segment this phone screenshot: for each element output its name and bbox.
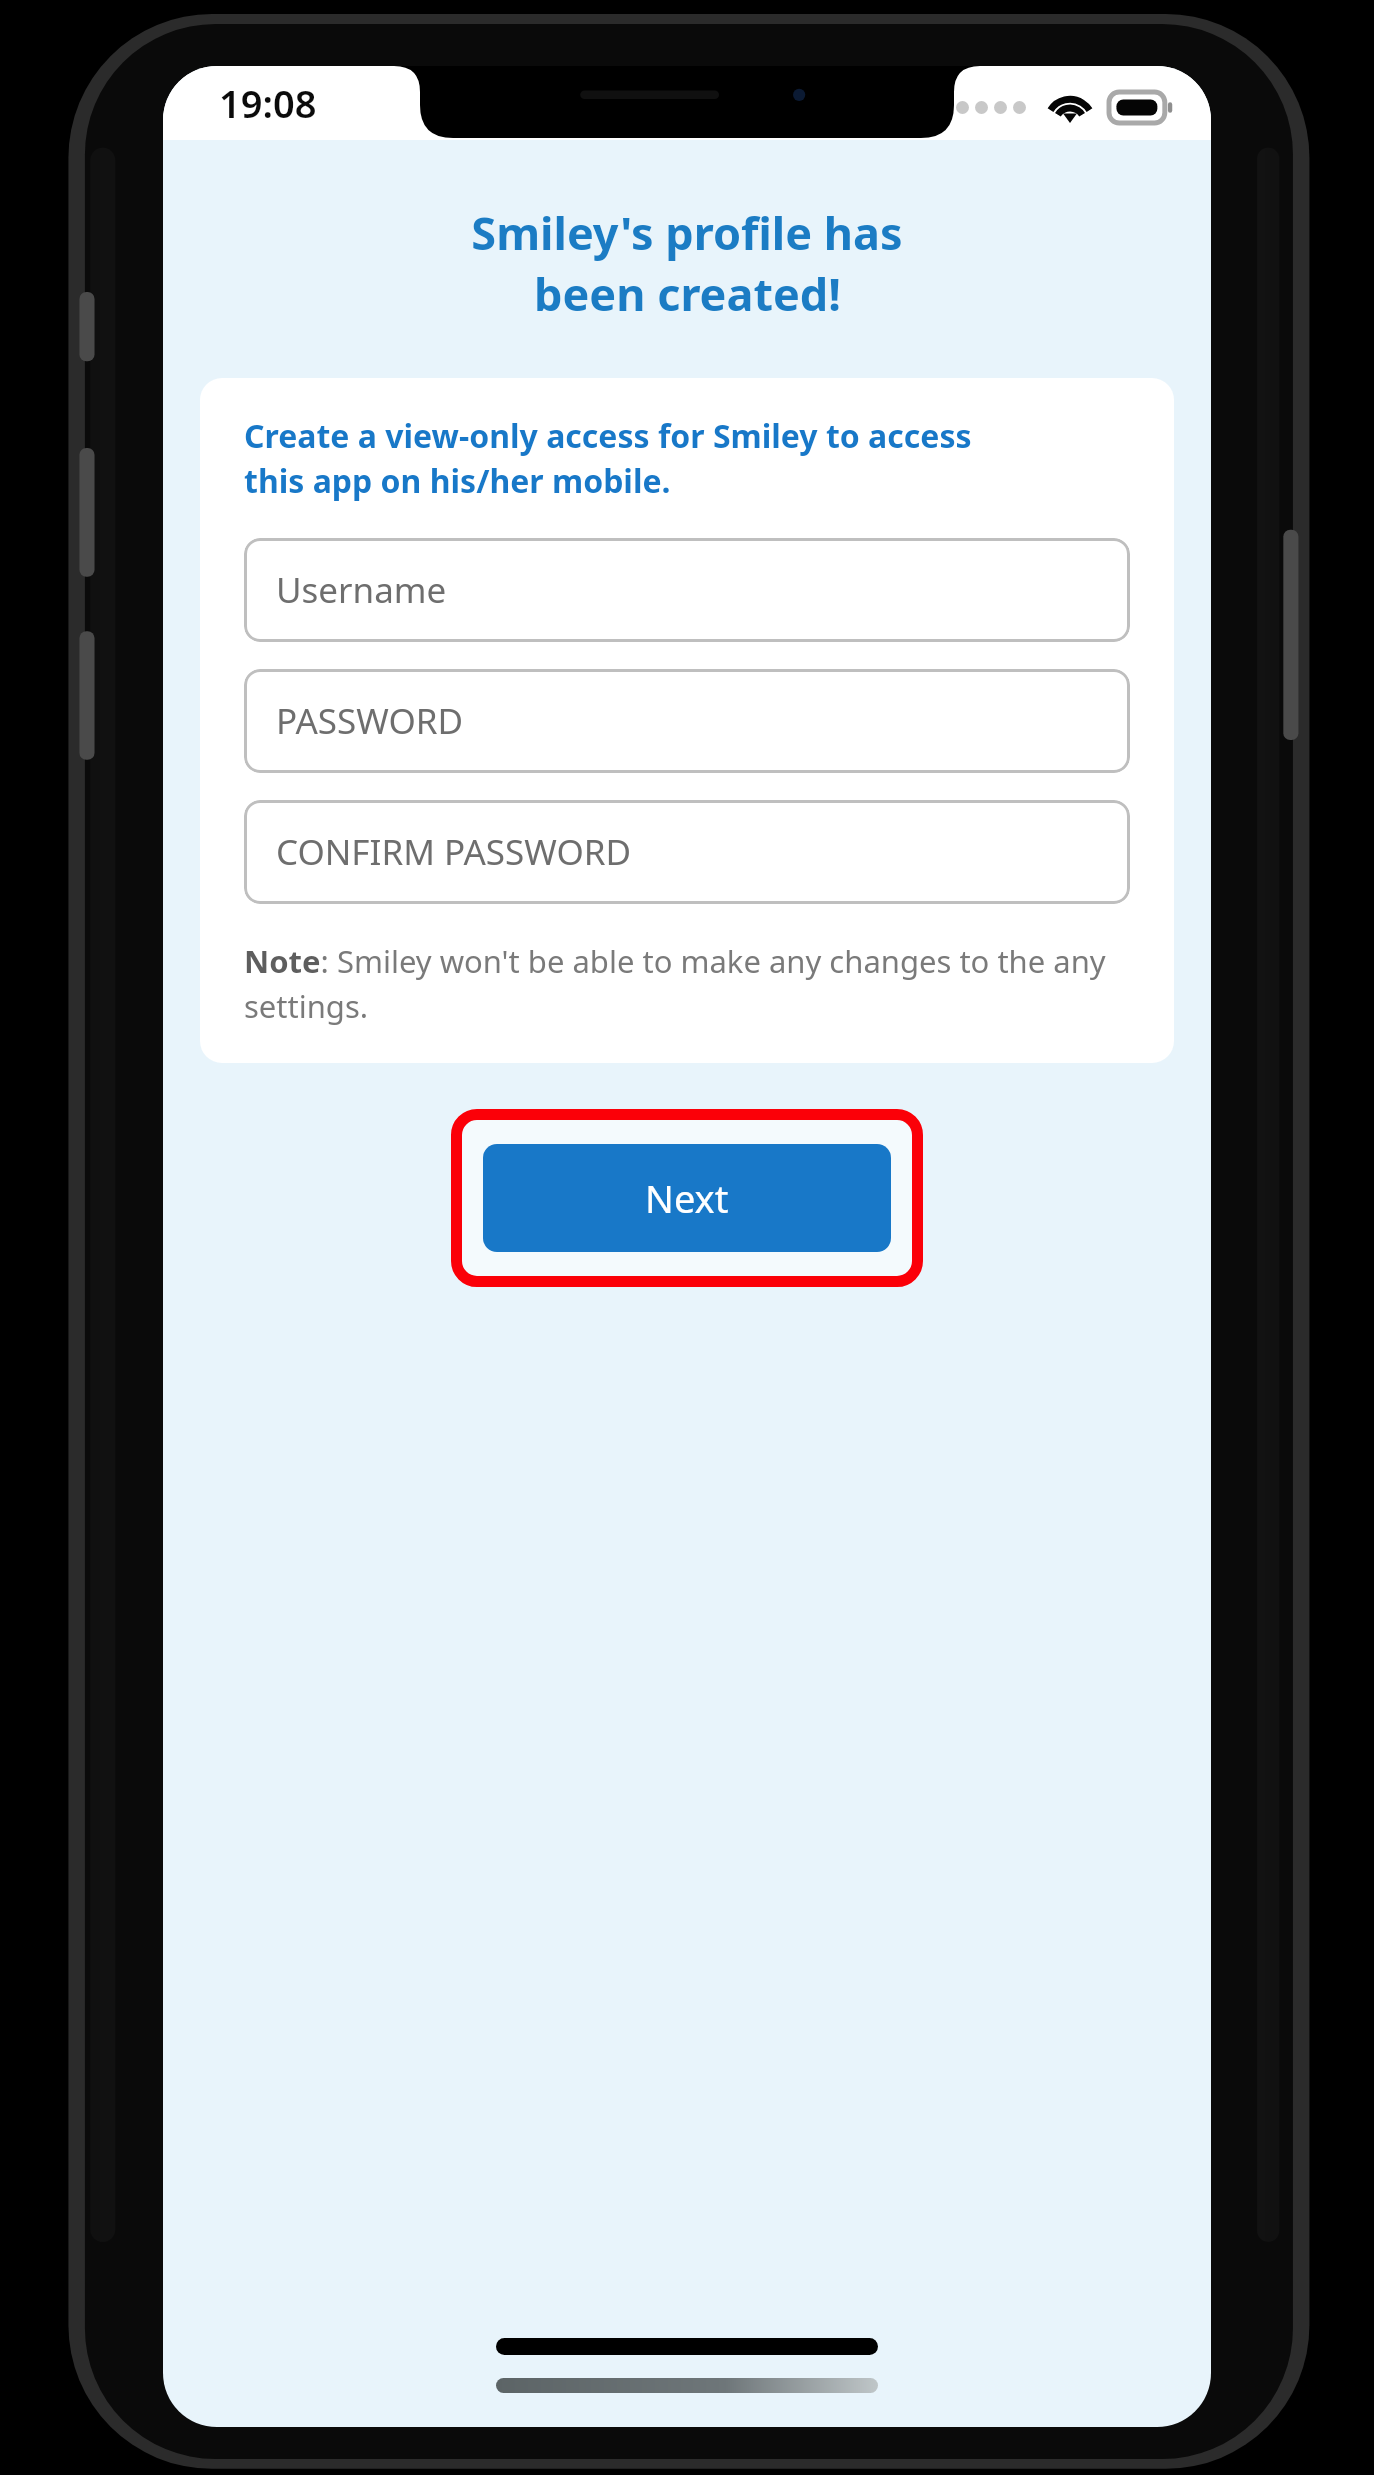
button[interactable]: CONFIRM PASSWORD [244,800,1130,904]
other: Home indicator [496,2338,878,2355]
staticText: PASSWORD [276,697,464,745]
staticText: 19:08 [219,77,317,129]
staticText: been created! [534,263,841,324]
button[interactable]: Next [483,1144,891,1252]
staticText: Next [645,1172,729,1224]
button[interactable]: PASSWORD [244,669,1130,773]
staticText: Username [276,566,447,614]
staticText: CONFIRM PASSWORD [276,828,632,876]
staticText: Note: Smiley won't be able to make any c… [244,940,1130,1027]
button[interactable]: Username [244,538,1130,642]
staticText: Smiley's profile has [471,202,903,263]
staticText: Create a view-only access for Smiley to … [244,414,972,502]
